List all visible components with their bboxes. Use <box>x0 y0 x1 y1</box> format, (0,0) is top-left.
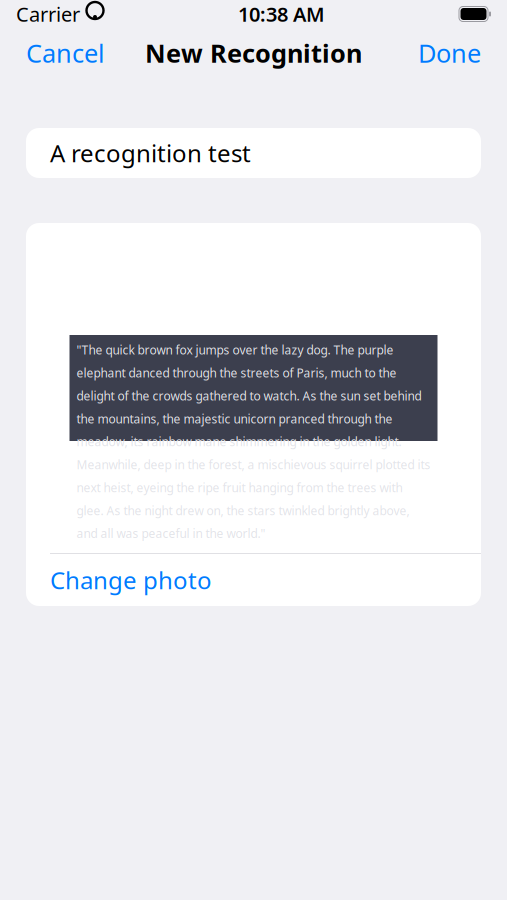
staticText: Change photo <box>50 564 212 596</box>
staticText: "The quick brown fox jumps over the lazy… <box>76 342 430 541</box>
button[interactable]: Done <box>408 28 491 78</box>
staticText: Done <box>418 36 481 70</box>
staticText: Cancel <box>26 36 105 70</box>
staticText: 10:38 AM <box>238 1 325 27</box>
button[interactable]: Change photo <box>26 554 481 606</box>
staticText: A recognition test <box>50 137 251 169</box>
staticText: New Recognition <box>145 36 362 70</box>
button[interactable]: Cancel <box>16 28 115 78</box>
staticText: Carrier <box>16 1 80 27</box>
